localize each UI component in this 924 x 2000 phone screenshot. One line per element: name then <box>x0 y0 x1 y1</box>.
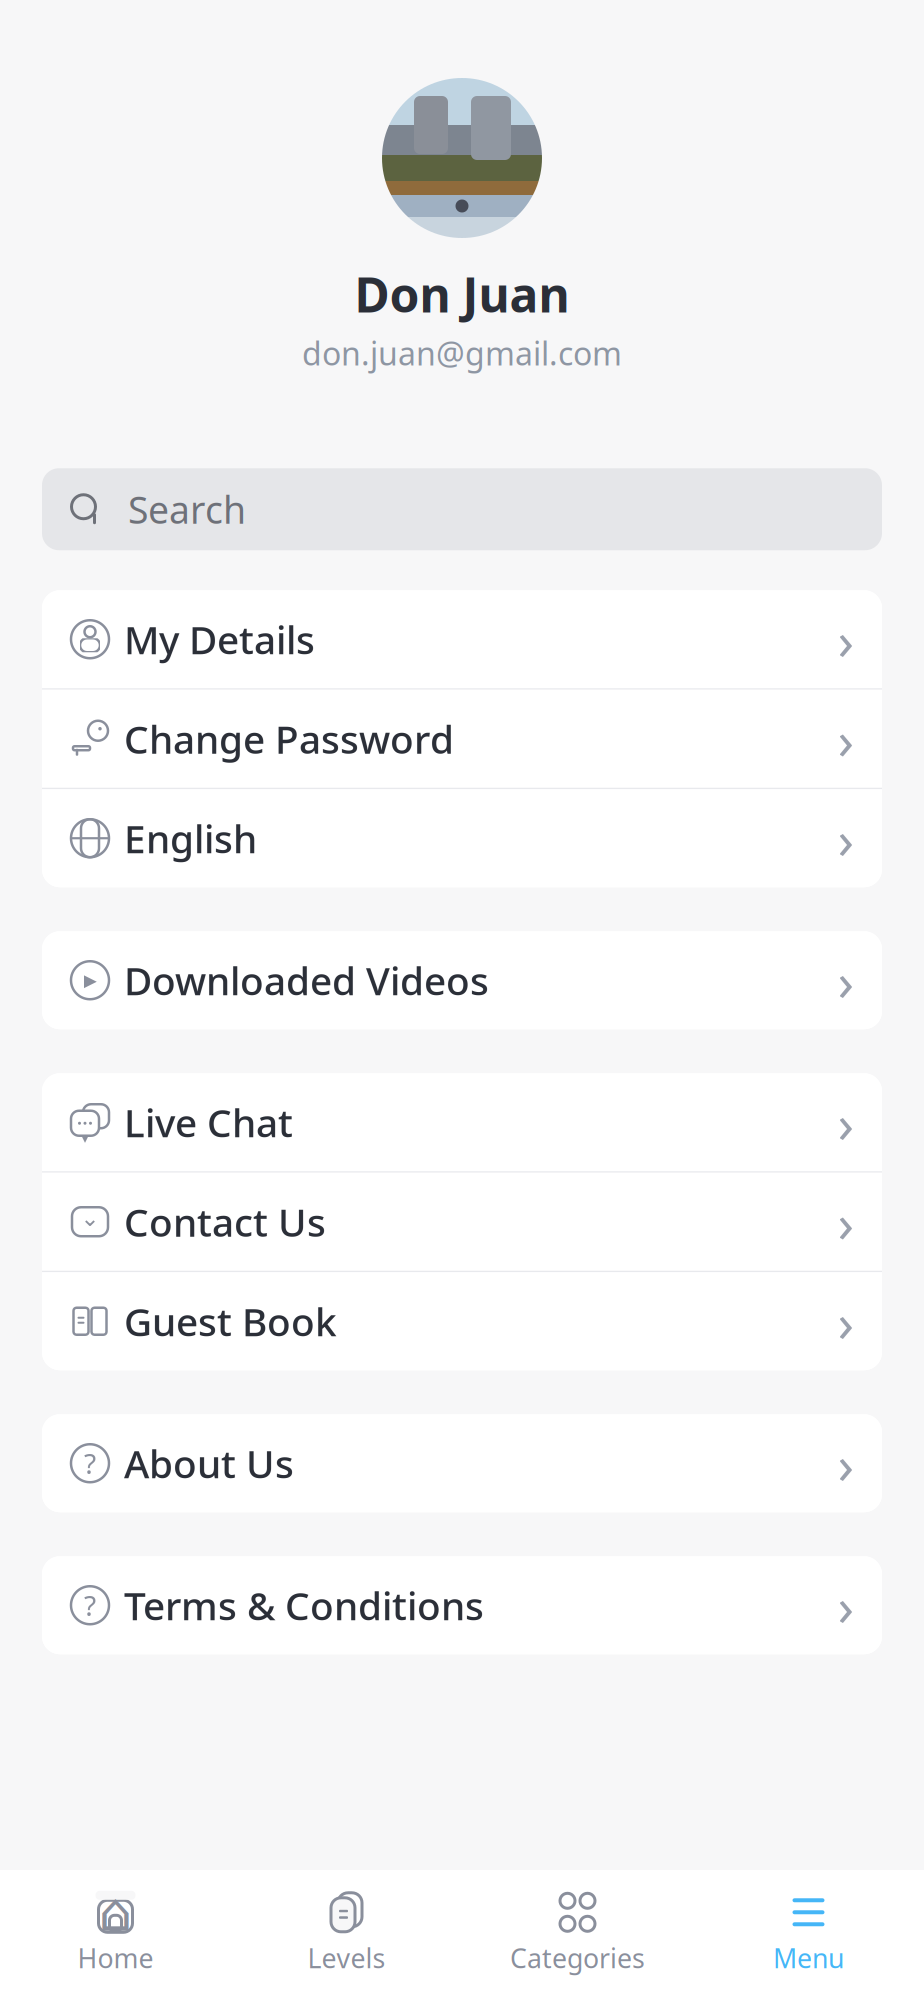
staticText: Search <box>128 484 246 534</box>
button[interactable]: Menu <box>693 1880 924 1990</box>
staticText: Downloaded Videos <box>124 955 489 1006</box>
staticText: Menu <box>773 1940 844 1976</box>
staticText: ▶ <box>83 970 96 990</box>
staticText: › <box>837 1428 854 1499</box>
staticText: › <box>837 1087 854 1158</box>
staticText: ? <box>84 1445 96 1482</box>
staticText: My Details <box>124 614 315 665</box>
button[interactable]: English <box>42 789 882 887</box>
staticText: ⌄ <box>80 1205 99 1231</box>
button[interactable]: Levels <box>231 1880 462 1990</box>
staticText: Contact Us <box>124 1196 326 1247</box>
button[interactable]: ? <box>42 1556 882 1654</box>
button[interactable]: Search <box>42 468 882 550</box>
staticText: › <box>837 1186 854 1257</box>
staticText: Levels <box>307 1940 385 1976</box>
staticText: Home <box>77 1940 153 1976</box>
staticText: › <box>837 803 854 874</box>
button[interactable]: ▾ <box>42 1073 882 1171</box>
staticText: Categories <box>510 1940 645 1976</box>
staticText: Terms & Conditions <box>124 1580 484 1631</box>
button[interactable]: Guest Book <box>42 1272 882 1370</box>
button[interactable]: Categories <box>462 1880 693 1990</box>
staticText: English <box>124 813 257 864</box>
button[interactable]: ? <box>42 1414 882 1512</box>
staticText: ▾ <box>82 1132 88 1145</box>
staticText: › <box>837 1570 854 1641</box>
button[interactable]: ⌂ <box>0 1880 231 1990</box>
button[interactable]: My Details <box>42 590 882 688</box>
button[interactable]: ⌄ <box>42 1173 882 1271</box>
staticText: don.juan@gmail.com <box>302 332 622 374</box>
staticText: ? <box>84 1587 96 1624</box>
staticText: › <box>837 703 854 774</box>
staticText: Don Juan <box>354 262 569 326</box>
staticText: Guest Book <box>124 1296 337 1347</box>
staticText: › <box>837 604 854 675</box>
staticText: About Us <box>124 1438 294 1489</box>
button[interactable]: Change Password <box>42 690 882 788</box>
staticText: › <box>837 945 854 1016</box>
button[interactable]: ▶ <box>42 931 882 1029</box>
staticText: › <box>837 1286 854 1357</box>
staticText: Change Password <box>124 713 454 764</box>
staticText: ⌂ <box>98 1882 132 1942</box>
staticText: Live Chat <box>124 1097 293 1148</box>
